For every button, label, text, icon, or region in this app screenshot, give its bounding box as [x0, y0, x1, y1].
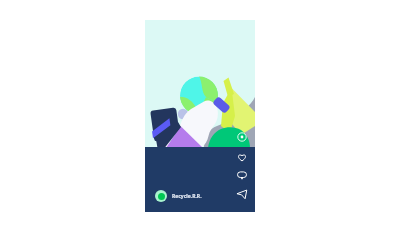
button[interactable]: Share	[235, 187, 249, 201]
button[interactable]: Like	[235, 150, 249, 164]
staticText: Recycle.R.R.	[172, 193, 202, 200]
button[interactable]: Recycle.R.R.	[155, 190, 202, 202]
button[interactable]: Comment	[235, 168, 249, 182]
button[interactable]: Follow	[235, 130, 249, 144]
